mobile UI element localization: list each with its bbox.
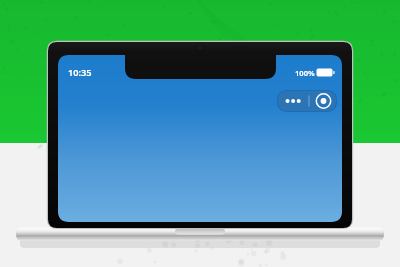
button[interactable]: More options bbox=[277, 90, 309, 112]
button[interactable]: Record bbox=[310, 90, 337, 112]
button[interactable]: Battery 100 percent bbox=[294, 64, 336, 80]
